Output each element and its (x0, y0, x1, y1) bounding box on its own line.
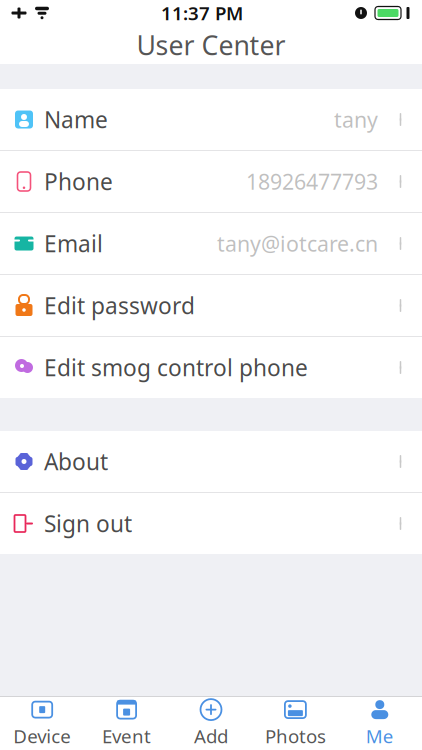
button[interactable]: Event (84, 697, 169, 750)
button[interactable]: Name (0, 89, 422, 150)
button[interactable]: Photos (253, 697, 338, 750)
staticText: Me (366, 724, 394, 748)
staticText: Add (194, 724, 228, 748)
staticText: tany (334, 105, 378, 134)
staticText: 18926477793 (246, 167, 378, 196)
button[interactable]: Edit password (0, 275, 422, 336)
staticText: Photos (265, 724, 326, 748)
button[interactable]: Phone (0, 151, 422, 212)
staticText: User Center (136, 27, 285, 63)
button[interactable]: Me (338, 697, 422, 750)
staticText: Sign out (44, 508, 132, 538)
button[interactable]: Device (0, 697, 84, 750)
staticText: Edit password (44, 290, 195, 320)
staticText: Event (102, 724, 151, 748)
button[interactable]: Sign out (0, 493, 422, 554)
button[interactable]: Email (0, 213, 422, 274)
staticText: About (44, 446, 108, 476)
staticText: Device (13, 724, 71, 748)
button[interactable]: Edit smog control phone (0, 337, 422, 398)
staticText: Edit smog control phone (44, 352, 308, 382)
staticText: 11:37 PM (161, 1, 243, 25)
button[interactable]: About (0, 431, 422, 492)
staticText: Name (44, 104, 108, 134)
staticText: Phone (44, 166, 113, 196)
button[interactable]: Add (169, 697, 253, 750)
staticText: Email (44, 228, 103, 258)
staticText: tany@iotcare.cn (217, 229, 378, 258)
